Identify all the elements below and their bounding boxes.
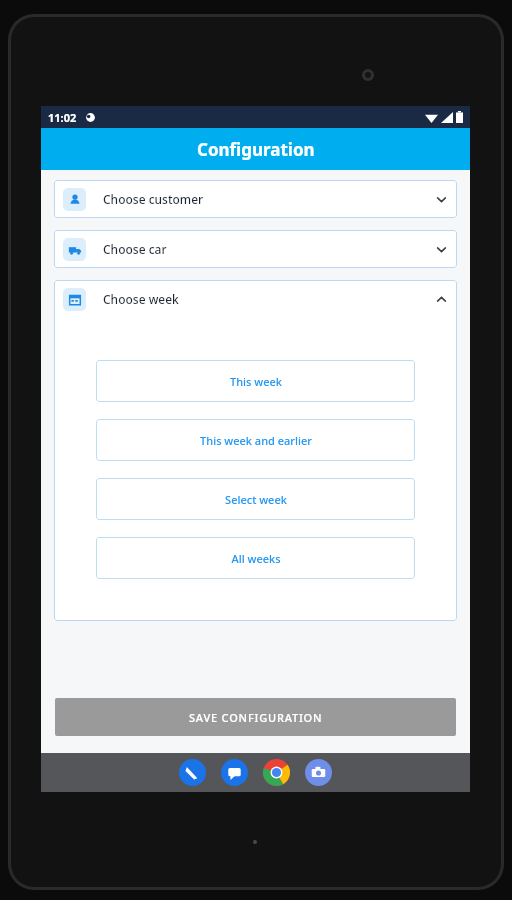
button[interactable]: All weeks <box>96 537 415 579</box>
button[interactable]: Choose car <box>54 230 457 268</box>
staticText: Choose customer <box>103 191 204 207</box>
button[interactable]: SAVE CONFIGURATION <box>55 698 456 736</box>
staticText: Configuration <box>197 138 315 161</box>
staticText: This week <box>230 374 282 389</box>
button[interactable]: Camera <box>305 759 332 786</box>
button[interactable]: Select week <box>96 478 415 520</box>
staticText: Choose car <box>103 241 167 257</box>
button[interactable]: This week <box>96 360 415 402</box>
button[interactable]: Phone <box>179 759 206 786</box>
button[interactable]: Messages <box>221 759 248 786</box>
staticText: 11:02 <box>48 110 77 125</box>
button[interactable]: Choose car <box>54 230 457 268</box>
button[interactable]: Chrome <box>263 759 290 786</box>
staticText: SAVE CONFIGURATION <box>189 710 323 725</box>
button[interactable]: Choose customer <box>54 180 457 218</box>
staticText: Select week <box>225 492 287 507</box>
button[interactable]: Choose customer <box>54 180 457 218</box>
staticText: Choose week <box>103 291 179 307</box>
staticText: This week and earlier <box>200 433 312 448</box>
button[interactable]: Choose week <box>54 280 457 318</box>
button[interactable]: This week and earlier <box>96 419 415 461</box>
staticText: All weeks <box>231 551 281 566</box>
